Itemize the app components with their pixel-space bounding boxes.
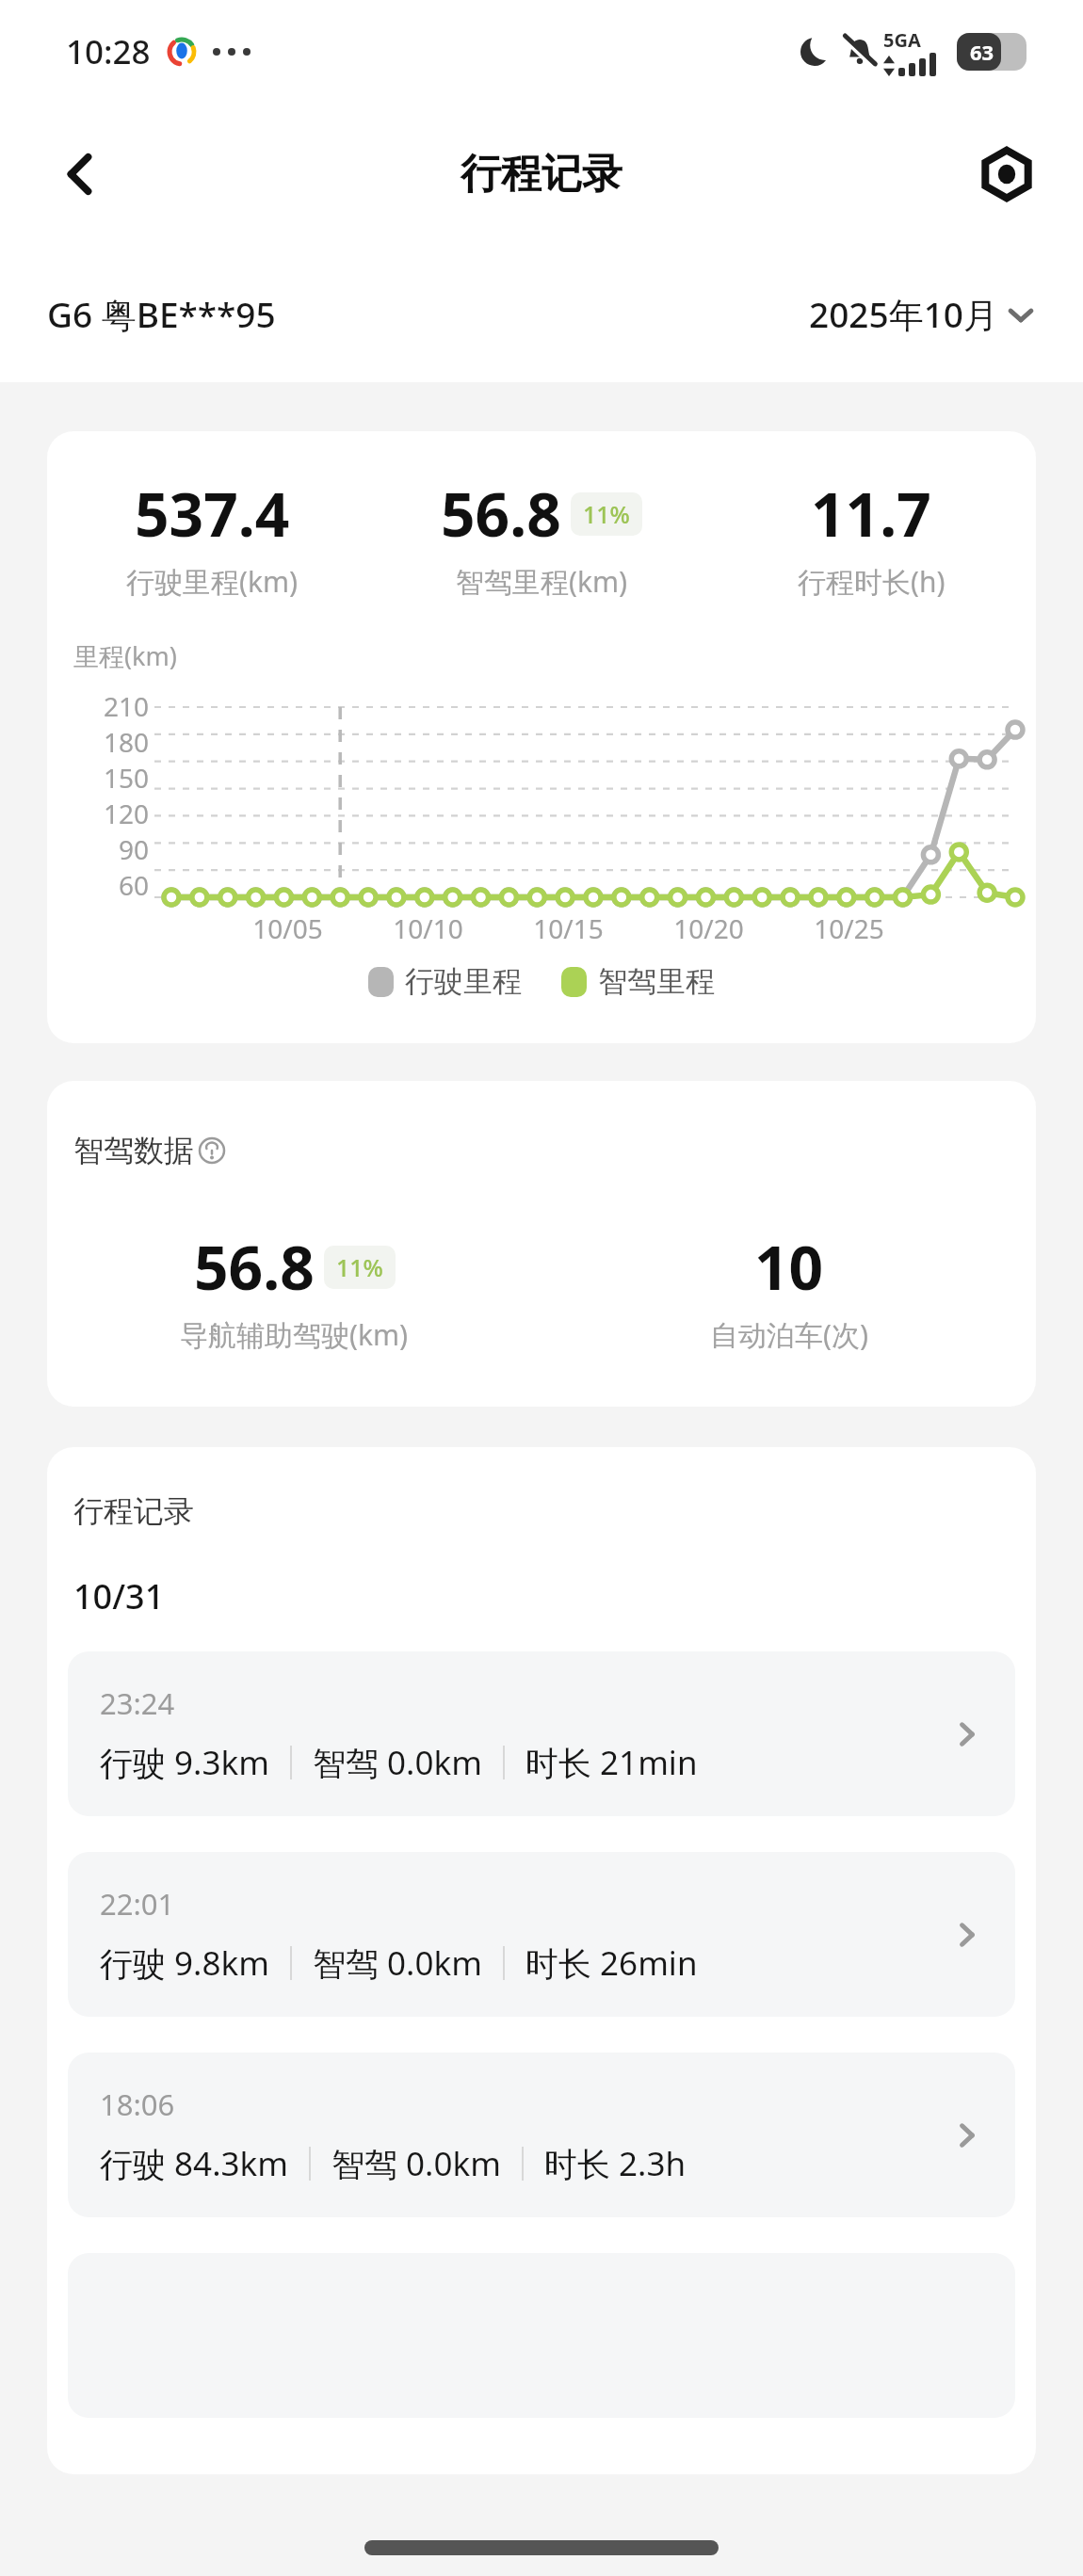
button[interactable]: 2025年10月 bbox=[809, 290, 1036, 338]
staticText: 56.8 bbox=[441, 473, 561, 555]
staticText: 行驶 9.8km bbox=[100, 1940, 269, 1986]
staticText: 智驾里程(km) bbox=[456, 562, 628, 601]
staticText: 10/10 bbox=[358, 910, 498, 946]
staticText: 10:28 bbox=[66, 29, 151, 74]
staticText: 10/25 bbox=[779, 910, 919, 946]
staticText: 537.4 bbox=[135, 473, 290, 555]
staticText: 行程记录 bbox=[73, 1492, 194, 1530]
staticText: 63 bbox=[970, 38, 994, 66]
staticText: 56.8 bbox=[194, 1226, 315, 1308]
staticText: 时长 26min bbox=[525, 1940, 698, 1986]
staticText: 行程记录 bbox=[461, 149, 622, 200]
button[interactable]: 22:01 bbox=[68, 1852, 1015, 2017]
staticText: 2025年10月 bbox=[809, 290, 998, 338]
staticText: 150 bbox=[103, 760, 149, 796]
button[interactable]: 智驾里程 bbox=[561, 963, 715, 1000]
staticText: 22:01 bbox=[100, 1884, 175, 1924]
staticText: 里程(km) bbox=[73, 638, 177, 673]
staticText: 90 bbox=[118, 831, 149, 867]
staticText: 行驶里程(km) bbox=[126, 562, 299, 601]
staticText: 行驶里程 bbox=[405, 963, 522, 1000]
button[interactable]: Settings bbox=[962, 130, 1051, 218]
staticText: 导航辅助驾驶(km) bbox=[180, 1315, 409, 1354]
staticText: 11% bbox=[583, 498, 630, 530]
staticText: 行驶 9.3km bbox=[100, 1740, 269, 1785]
staticText: 120 bbox=[103, 796, 149, 831]
staticText: 11% bbox=[336, 1251, 383, 1283]
staticText: 时长 21min bbox=[525, 1740, 698, 1785]
button[interactable]: 行驶里程 bbox=[368, 963, 522, 1000]
staticText: 智驾里程 bbox=[598, 963, 715, 1000]
button[interactable]: G6 粤BE***95 bbox=[47, 290, 276, 338]
staticText: 5GA bbox=[883, 27, 921, 53]
staticText: 18:06 bbox=[100, 2085, 175, 2124]
staticText: 10 bbox=[754, 1226, 824, 1308]
other: Help bbox=[198, 1136, 226, 1165]
staticText: 60 bbox=[118, 867, 149, 903]
staticText: 行驶 84.3km bbox=[100, 2141, 288, 2186]
staticText: 智驾 0.0km bbox=[331, 2141, 501, 2186]
staticText: 23:24 bbox=[100, 1683, 175, 1723]
button[interactable]: Back bbox=[36, 130, 124, 218]
staticText: 智驾 0.0km bbox=[313, 1740, 482, 1785]
staticText: 10/05 bbox=[218, 910, 358, 946]
button[interactable]: 23:24 bbox=[68, 1651, 1015, 1816]
staticText: 210 bbox=[103, 688, 149, 724]
staticText: 行程时长(h) bbox=[798, 562, 946, 601]
staticText: 10/15 bbox=[498, 910, 638, 946]
staticText: 自动泊车(次) bbox=[710, 1315, 868, 1354]
staticText: 11.7 bbox=[811, 473, 931, 555]
staticText: 10/20 bbox=[638, 910, 779, 946]
staticText: 智驾 0.0km bbox=[313, 1940, 482, 1986]
button[interactable]: 智驾数据 bbox=[73, 1132, 226, 1169]
staticText: 智驾数据 bbox=[73, 1132, 194, 1169]
staticText: 10/31 bbox=[73, 1573, 165, 1619]
staticText: 180 bbox=[103, 724, 149, 760]
staticText: 时长 2.3h bbox=[544, 2141, 687, 2186]
button[interactable]: 18:06 bbox=[68, 2053, 1015, 2217]
